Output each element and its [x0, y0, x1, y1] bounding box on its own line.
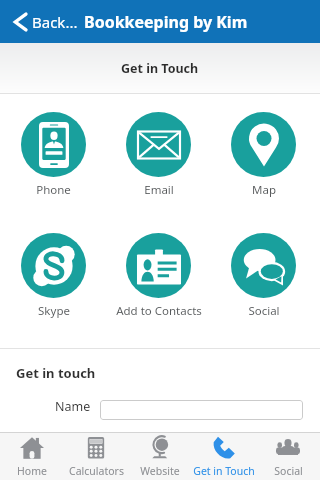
staticText: Add to Contacts [116, 303, 202, 319]
button[interactable]: Social [211, 233, 316, 319]
staticText: Social [274, 464, 303, 478]
button[interactable]: Skype [1, 233, 106, 319]
button[interactable]: Add to Contacts [106, 233, 211, 319]
staticText: Get in Touch [193, 464, 255, 478]
staticText: Phone [36, 182, 71, 198]
staticText: Home [17, 464, 47, 478]
staticText: Map [252, 182, 276, 198]
staticText: Social [248, 303, 280, 319]
staticText: Calculators [69, 464, 124, 478]
staticText: Skype [38, 303, 70, 319]
button[interactable]: Calculators [64, 433, 128, 480]
staticText: Website [140, 464, 180, 478]
staticText: Bookkeeping by Kim [84, 11, 248, 33]
staticText: Email [144, 182, 174, 198]
button[interactable]: Back... [0, 0, 86, 43]
button[interactable]: Website [128, 433, 192, 480]
staticText: Back... [32, 12, 78, 32]
staticText: Get in Touch [121, 60, 199, 77]
button[interactable]: Home [0, 433, 64, 480]
staticText: Get in touch [16, 364, 96, 382]
button[interactable]: Get in Touch [192, 433, 256, 480]
button[interactable]: Map [211, 112, 316, 198]
staticText: Name [55, 398, 91, 415]
button[interactable]: Social [256, 433, 320, 480]
button[interactable] [100, 400, 303, 420]
button[interactable]: Email [106, 112, 211, 198]
button[interactable]: Phone [1, 112, 106, 198]
